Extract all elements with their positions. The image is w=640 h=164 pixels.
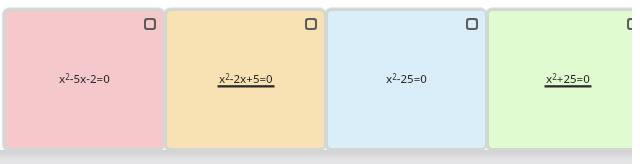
button[interactable]: Select equation: [627, 18, 639, 30]
button[interactable]: Select equation: [305, 18, 317, 30]
staticText: x2-25=0: [386, 71, 427, 87]
button[interactable]: x squared minus 2x plus 5 equals 0: [167, 11, 324, 148]
button[interactable]: x squared minus 25 equals 0: [328, 11, 485, 148]
button[interactable]: x squared plus 25 equals 0: [489, 11, 640, 148]
button[interactable]: Select equation: [466, 18, 478, 30]
staticText: x2+25=0: [546, 71, 590, 87]
staticText: x2-2x+5=0: [219, 71, 273, 87]
button[interactable]: x squared minus 5x minus 2 equals 0: [6, 11, 163, 148]
button[interactable]: Select equation: [144, 18, 156, 30]
staticText: x2-5x-2=0: [59, 71, 110, 87]
